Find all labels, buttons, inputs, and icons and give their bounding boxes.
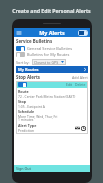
staticText: My Alerts [39,29,65,36]
staticText: More Time, Wed, Thur, Fri 1 minutes [18,114,58,122]
staticText: Create and Edit Personal Alerts [0,7,103,14]
button[interactable]: Toggle off [16,52,88,57]
staticText: Service Bulletins [16,38,53,44]
button[interactable]: Add Alert [72,75,88,80]
staticText: Sort by: [16,60,30,65]
staticText: Stop [18,99,27,104]
other: Time alert [81,126,86,131]
staticText: Sign Out [16,166,32,171]
staticText: Route [18,89,29,94]
button[interactable]: My Routes [18,66,86,73]
staticText: Alert Type [18,123,37,128]
staticText: My Routes [18,67,84,72]
button[interactable]: Toggle off [16,52,25,57]
other: Email alert [75,126,80,130]
staticText: Prediction [18,128,35,133]
button[interactable]: Delete [75,82,86,87]
staticText: Delete [75,82,86,87]
staticText: 72 - Center Park Metro Station (EAST) [18,94,76,98]
button[interactable]: Alerts toggle [78,30,88,36]
button[interactable]: Closest to GPS [34,59,64,65]
button[interactable]: Menu [16,30,22,36]
staticText: Closest to GPS [34,60,59,65]
button[interactable]: Edit [66,82,73,87]
button[interactable]: Toggle on [18,82,27,87]
staticText: Bulletins for My Routes [27,52,70,57]
button[interactable]: Toggle on [16,46,88,51]
staticText: Edit [66,82,73,87]
staticText: Schedule [18,109,35,114]
staticText: Stop Alerts [16,74,72,80]
staticText: 1:05 - Eastpoint A [18,104,45,108]
staticText: Add Alert [72,75,88,80]
button[interactable]: Sign Out [14,165,90,172]
staticText: General Service Bulletins [27,46,73,51]
button[interactable]: Toggle on [16,46,25,51]
